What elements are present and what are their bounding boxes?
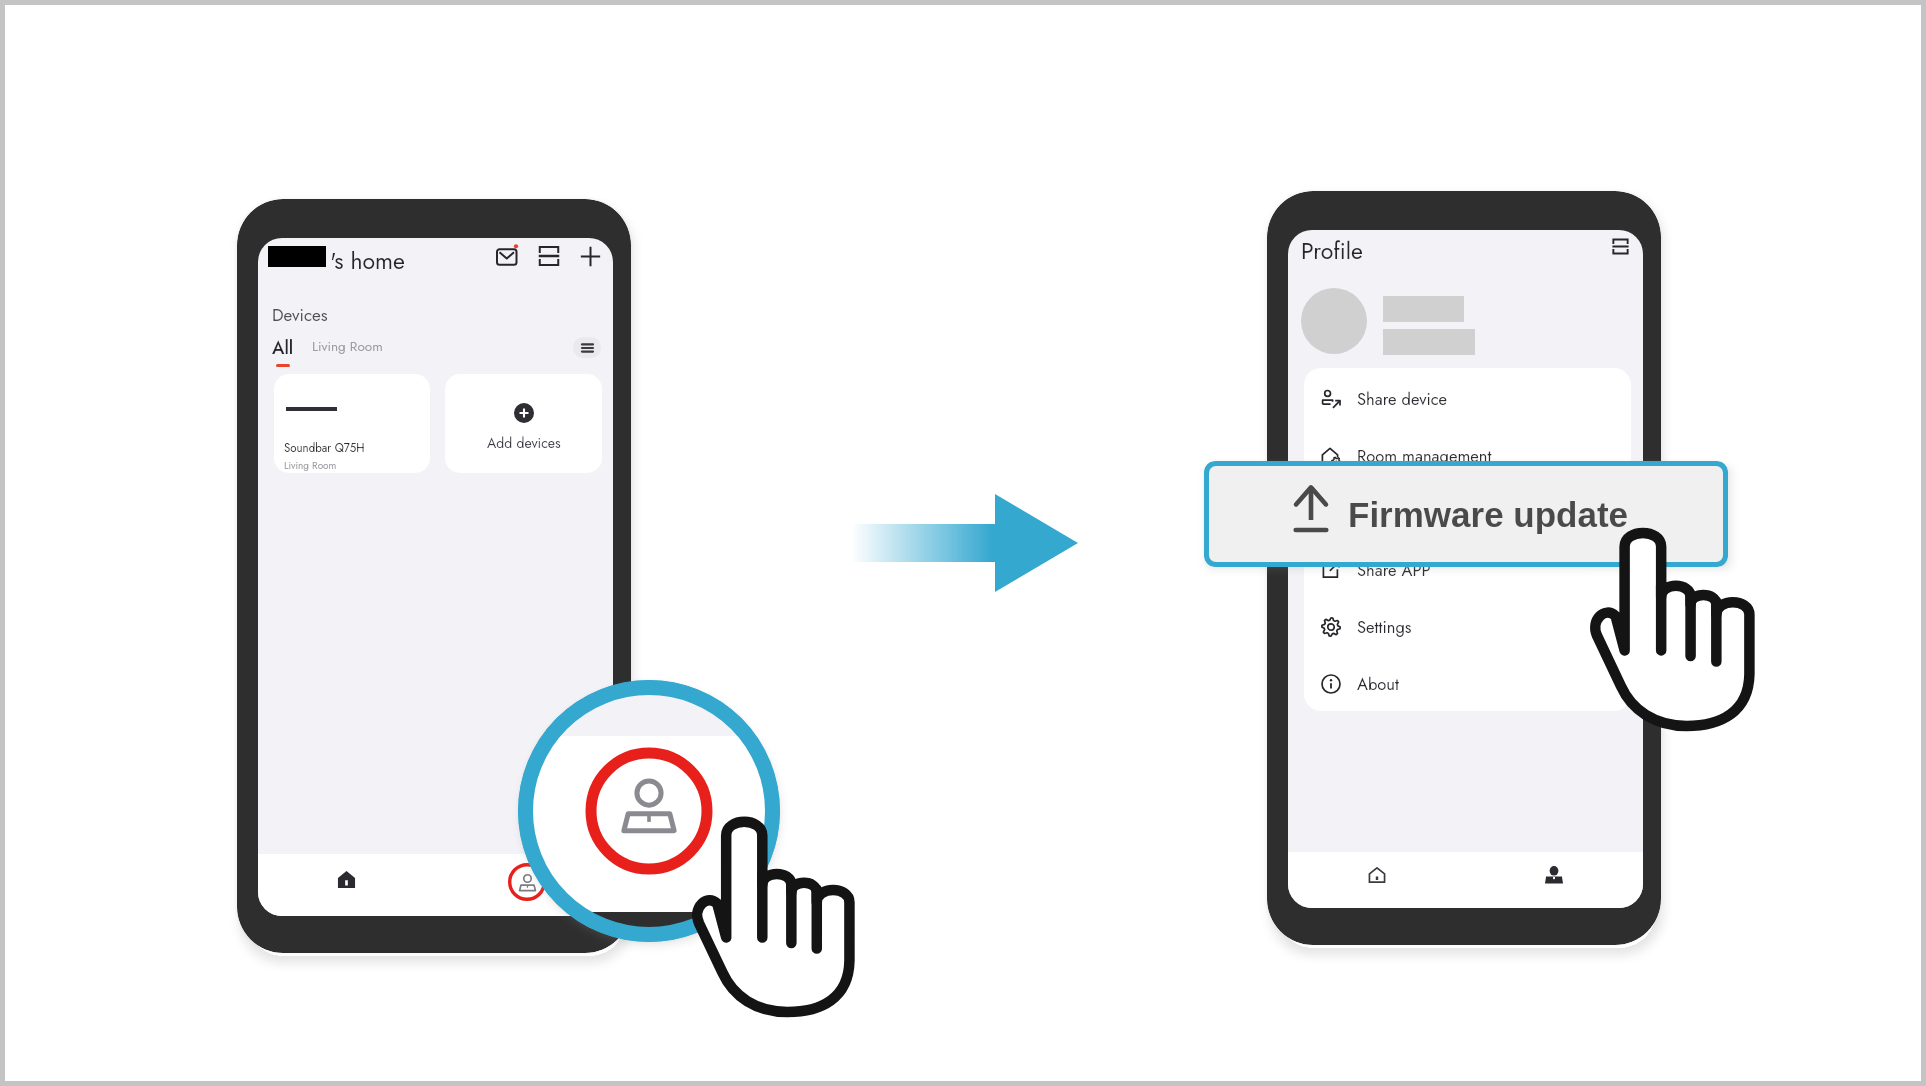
- button[interactable]: Firmware update: [1304, 484, 1631, 541]
- staticText: About: [1357, 672, 1399, 696]
- button[interactable]: Add device: [579, 245, 602, 268]
- staticText: Room management: [1357, 444, 1492, 468]
- button[interactable]: Room management: [1304, 427, 1631, 484]
- button[interactable]: Home: [1288, 852, 1465, 908]
- staticText: Living Room: [284, 458, 337, 472]
- staticText: Share APP: [1357, 558, 1431, 582]
- button[interactable]: Add devices: [445, 374, 602, 473]
- staticText: Devices: [272, 303, 328, 328]
- button[interactable]: Share APP: [1304, 541, 1631, 598]
- button[interactable]: Sort devices: [573, 337, 601, 358]
- button[interactable]: Profile: [435, 854, 613, 916]
- button[interactable]: Living Room: [312, 341, 383, 361]
- staticText: Share device: [1357, 387, 1448, 411]
- staticText: All: [272, 335, 294, 361]
- button[interactable]: Split screen: [1612, 238, 1629, 255]
- button[interactable]: Firmware update: [1209, 466, 1723, 562]
- button[interactable]: Share device: [1304, 370, 1631, 427]
- staticText: 's home: [330, 244, 405, 277]
- staticText: Soundbar Q75H: [284, 440, 365, 457]
- staticText: Profile: [1301, 234, 1363, 267]
- staticText: Firmware update: [1348, 495, 1629, 534]
- button[interactable]: Split screen: [538, 245, 560, 267]
- button[interactable]: Settings: [1304, 598, 1631, 655]
- staticText: Firmware update: [1357, 501, 1474, 525]
- button[interactable]: Messages: [496, 244, 521, 269]
- button[interactable]: About: [1304, 655, 1631, 711]
- button[interactable]: Soundbar Q75H: [274, 374, 430, 473]
- staticText: Settings: [1357, 615, 1412, 639]
- staticText: Add devices: [487, 433, 561, 453]
- button[interactable]: All: [272, 335, 294, 367]
- button[interactable]: Profile: [1465, 852, 1643, 908]
- button[interactable]: Home: [258, 854, 435, 916]
